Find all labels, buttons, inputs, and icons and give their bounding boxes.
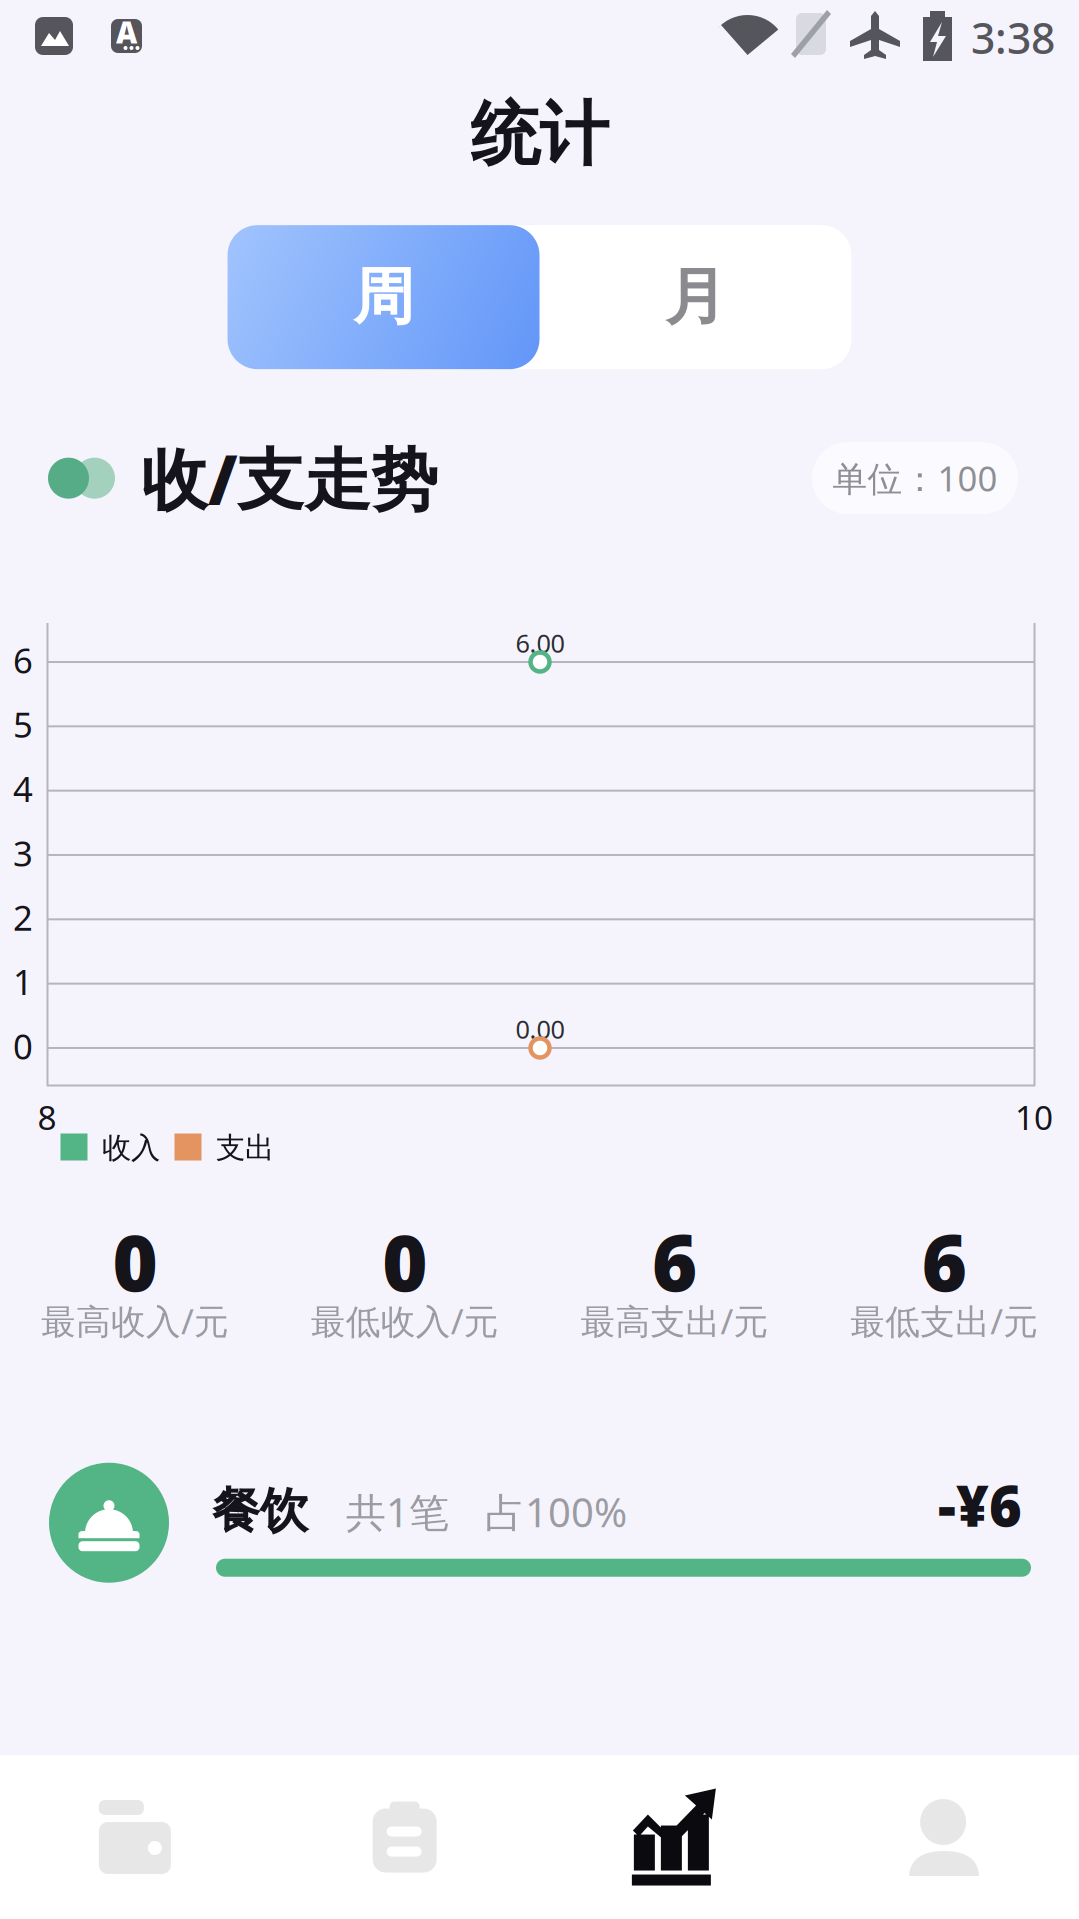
staticText: 10 bbox=[1015, 1095, 1053, 1139]
staticText: 3 bbox=[13, 830, 33, 876]
staticText: 收/支走势 bbox=[141, 434, 438, 522]
staticText: 3:38 bbox=[971, 9, 1055, 66]
staticText: 4 bbox=[13, 766, 33, 812]
button[interactable]: 餐饮 bbox=[0, 1463, 1079, 1584]
staticText: 支出 bbox=[216, 1130, 274, 1166]
staticText: 0.00 bbox=[515, 1012, 564, 1046]
staticText: 最低收入/元 bbox=[311, 1298, 499, 1344]
staticText: A bbox=[116, 12, 137, 51]
staticText: 收入 bbox=[102, 1130, 160, 1166]
button[interactable]: Statistics bbox=[539, 1755, 809, 1919]
staticText: 月 bbox=[665, 259, 726, 335]
staticText: 最高支出/元 bbox=[580, 1298, 768, 1344]
staticText: 0 bbox=[13, 1023, 33, 1069]
staticText: 8 bbox=[37, 1095, 56, 1139]
staticText: 6 bbox=[922, 1210, 967, 1313]
button[interactable]: Records bbox=[270, 1755, 540, 1919]
staticText: 最高收入/元 bbox=[41, 1298, 229, 1344]
button[interactable]: 月 bbox=[539, 225, 851, 369]
staticText: 占100% bbox=[485, 1485, 627, 1538]
staticText: 共1笔 bbox=[346, 1485, 449, 1538]
staticText: 最低支出/元 bbox=[850, 1298, 1038, 1344]
staticText: 0 bbox=[382, 1210, 427, 1313]
staticText: 周 bbox=[353, 259, 414, 335]
staticText: 5 bbox=[13, 701, 33, 747]
staticText: 6 bbox=[13, 637, 33, 683]
staticText: 1 bbox=[13, 959, 33, 1005]
staticText: 6 bbox=[652, 1210, 697, 1313]
staticText: 单位：100 bbox=[832, 455, 997, 501]
staticText: 2 bbox=[13, 894, 33, 940]
button[interactable]: 周 bbox=[227, 225, 539, 369]
button[interactable]: Profile bbox=[809, 1755, 1079, 1919]
staticText: 统计 bbox=[470, 92, 608, 177]
staticText: 0 bbox=[112, 1210, 157, 1313]
staticText: 6.00 bbox=[515, 626, 564, 660]
button[interactable]: Accounts bbox=[0, 1755, 270, 1919]
staticText: -¥6 bbox=[938, 1468, 1022, 1542]
staticText: 餐饮 bbox=[212, 1481, 308, 1540]
